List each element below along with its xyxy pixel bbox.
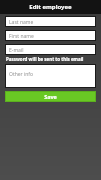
button[interactable]: First name [5,30,96,41]
staticText: Edit employee [29,3,72,11]
staticText: Save [44,93,57,100]
button[interactable]: E-mail [5,44,96,55]
staticText: Last name [9,19,34,26]
staticText: Password will be sent to this email [6,56,84,62]
button[interactable]: Save [5,91,96,102]
staticText: E-mail [9,47,24,54]
button[interactable]: Last name [5,16,96,27]
staticText: First name [9,33,34,40]
button[interactable]: Other info [5,64,96,88]
staticText: Other info [9,71,34,78]
